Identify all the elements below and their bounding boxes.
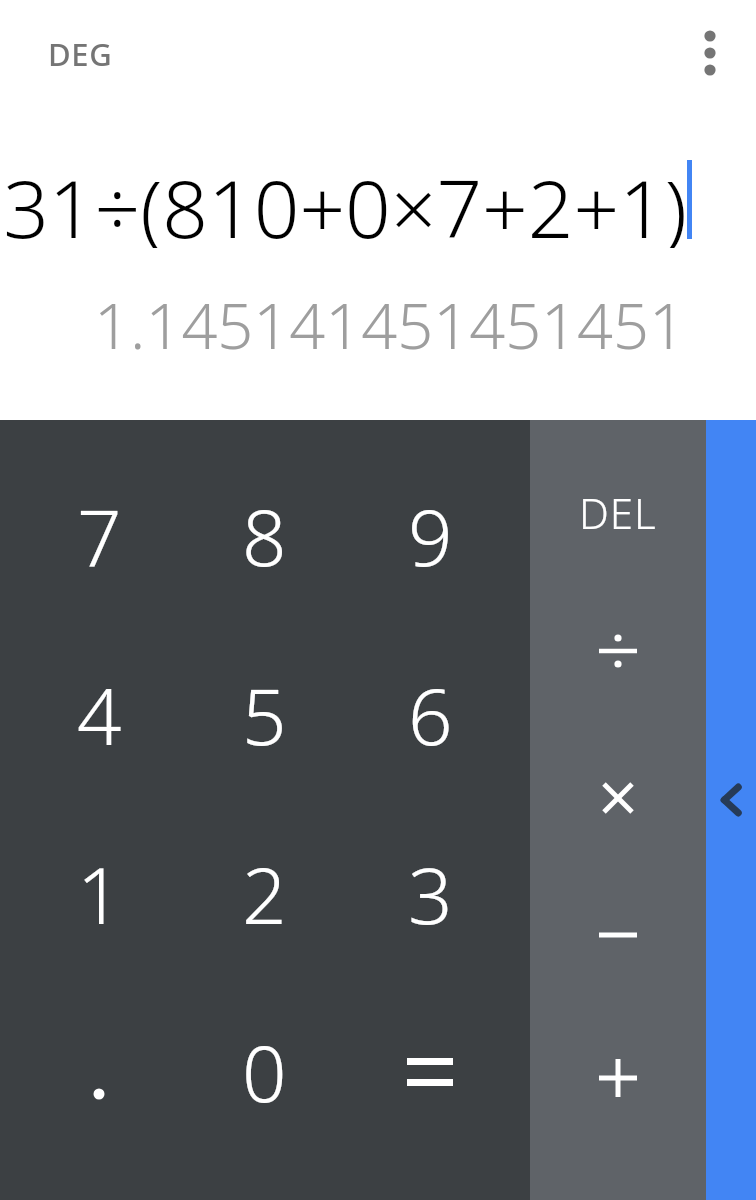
button[interactable]: 2 [176, 804, 352, 983]
staticText: 3 [408, 841, 453, 947]
staticText: 5 [242, 662, 287, 768]
button[interactable]: 6 [342, 625, 518, 804]
staticText: 1 [77, 841, 122, 947]
button[interactable]: Open advanced pad [706, 420, 756, 1200]
staticText: 0 [242, 1019, 287, 1125]
staticText: DEG [48, 33, 113, 75]
button[interactable]: 8 [176, 446, 352, 625]
button[interactable]: Plus [530, 1008, 706, 1148]
button[interactable] [342, 982, 518, 1161]
button[interactable]: 4 [11, 625, 187, 804]
staticText: 931÷(810+0×7+2+1) [0, 152, 687, 248]
button[interactable]: 1 [11, 804, 187, 983]
staticText: 9 [408, 483, 453, 589]
button[interactable]: 3 [342, 804, 518, 983]
staticText: 4 [77, 662, 122, 768]
staticText: 6 [408, 662, 453, 768]
button[interactable]: More options [674, 20, 746, 92]
button[interactable]: 9 [342, 446, 518, 625]
button[interactable]: DEG [30, 22, 126, 86]
button[interactable]: Multiply [530, 728, 706, 868]
button[interactable]: 5 [176, 625, 352, 804]
staticText: 8 [242, 483, 287, 589]
staticText: 1.145141451451451 [0, 282, 685, 362]
button[interactable]: Divide [530, 581, 706, 721]
staticText: DEL [579, 484, 657, 541]
button[interactable] [11, 982, 187, 1161]
button[interactable]: DEL [530, 442, 706, 582]
button[interactable]: 7 [11, 446, 187, 625]
staticText: 2 [242, 841, 287, 947]
button[interactable]: 0 [176, 982, 352, 1161]
staticText: 7 [77, 483, 122, 589]
button[interactable]: Minus [530, 865, 706, 1005]
